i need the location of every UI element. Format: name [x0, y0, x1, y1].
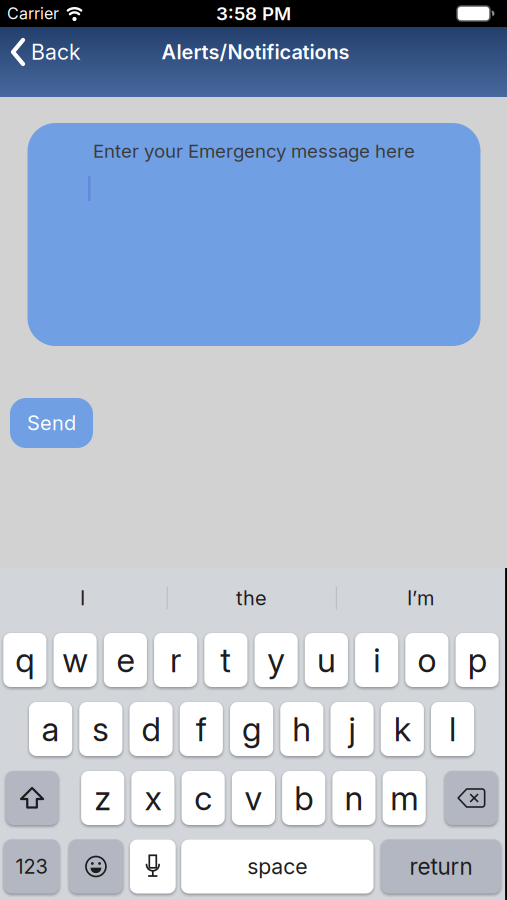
staticText: d	[142, 709, 161, 749]
button[interactable]: Send	[10, 398, 93, 448]
button[interactable]: the	[167, 568, 336, 628]
button[interactable]: c	[182, 771, 225, 825]
button[interactable]: t	[204, 633, 247, 687]
button[interactable]: f	[180, 702, 223, 756]
staticText: u	[317, 640, 336, 680]
button[interactable]: 123	[4, 839, 59, 893]
staticText: t	[220, 640, 231, 680]
staticText: 3:58 PM	[216, 2, 291, 24]
button[interactable]: o	[405, 633, 448, 687]
button[interactable]: z	[81, 771, 124, 825]
staticText: o	[417, 640, 436, 680]
button[interactable]: j	[330, 702, 374, 756]
staticText: return	[410, 853, 473, 880]
button[interactable]: y	[254, 633, 298, 687]
button[interactable]: r	[154, 633, 197, 687]
staticText: r	[170, 640, 181, 680]
button[interactable]: q	[3, 633, 46, 687]
staticText: i	[373, 640, 380, 680]
staticText: q	[15, 640, 34, 680]
button[interactable]: Enter your Emergency message here	[27, 123, 480, 346]
staticText: y	[267, 640, 285, 680]
button[interactable]: Back	[0, 39, 81, 65]
staticText: g	[242, 709, 261, 749]
staticText: Carrier	[7, 4, 59, 23]
button[interactable]: a	[29, 702, 72, 756]
button[interactable]: h	[280, 702, 323, 756]
button[interactable]: l	[431, 702, 474, 756]
staticText: h	[292, 709, 311, 749]
staticText: c	[194, 778, 212, 818]
button[interactable]: k	[381, 702, 424, 756]
staticText: x	[144, 778, 161, 818]
staticText: j	[349, 709, 356, 749]
button[interactable]: x	[131, 771, 174, 825]
staticText: Send	[27, 411, 76, 435]
staticText: m	[390, 778, 418, 818]
staticText: I’m	[407, 586, 434, 610]
button[interactable]: p	[456, 633, 499, 687]
staticText: 123	[16, 855, 48, 878]
button[interactable]: d	[129, 702, 173, 756]
staticText: p	[468, 640, 487, 680]
staticText: the	[236, 586, 267, 610]
staticText: k	[394, 709, 411, 749]
button[interactable]: w	[53, 633, 97, 687]
button[interactable]: n	[332, 771, 375, 825]
staticText: n	[344, 778, 363, 818]
button[interactable]: b	[282, 771, 325, 825]
staticText: Alerts/Notifications	[161, 40, 349, 64]
staticText: Enter your Emergency message here	[93, 140, 415, 162]
staticText: b	[294, 778, 313, 818]
staticText: w	[62, 640, 88, 680]
button[interactable]	[130, 839, 176, 893]
button[interactable]: I	[0, 568, 167, 628]
button[interactable]: space	[181, 839, 373, 893]
button[interactable]: return	[381, 839, 501, 893]
staticText: e	[116, 640, 134, 680]
button[interactable]: u	[305, 633, 348, 687]
staticText: a	[42, 709, 60, 749]
staticText: f	[196, 709, 207, 749]
staticText: z	[94, 778, 111, 818]
staticText: space	[247, 854, 307, 879]
button[interactable]: v	[232, 771, 275, 825]
button[interactable]: g	[230, 702, 273, 756]
staticText: v	[244, 778, 262, 818]
button[interactable]: i	[355, 633, 398, 687]
button[interactable]: s	[79, 702, 122, 756]
staticText: Back	[31, 39, 81, 65]
button[interactable]	[69, 839, 123, 893]
button[interactable]	[445, 771, 497, 825]
button[interactable]	[6, 771, 58, 825]
staticText: l	[449, 709, 456, 749]
staticText: I	[80, 586, 85, 610]
staticText: s	[92, 709, 109, 749]
button[interactable]: e	[104, 633, 147, 687]
button[interactable]: I’m	[336, 568, 505, 628]
button[interactable]: m	[383, 771, 426, 825]
